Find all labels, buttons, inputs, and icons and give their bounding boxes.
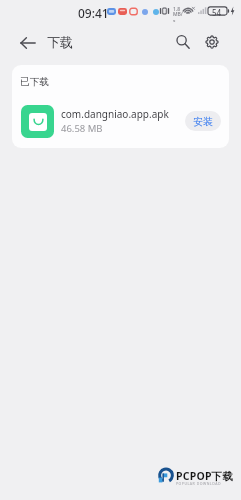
button[interactable]: Settings [198,28,226,56]
staticText: 安装 [193,115,213,128]
staticText: 1.8 [173,6,181,13]
button[interactable]: com.dangniao.app.apk [12,102,229,140]
button[interactable]: Search [169,28,197,56]
staticText: 下载 [47,34,73,50]
button[interactable]: 安装 [185,111,221,131]
button[interactable]: Back [12,27,43,58]
staticText: 09:41 [78,5,109,21]
staticText: com.dangniao.app.apk [61,107,169,121]
staticText: POPULAR DOWNLOAD [176,481,222,486]
staticText: MB/s [173,11,185,22]
staticText: PCPOP下载 [176,469,234,483]
staticText: 已下载 [20,76,50,88]
staticText: 46.58 MB [61,122,103,135]
staticText: 54 [212,7,222,17]
